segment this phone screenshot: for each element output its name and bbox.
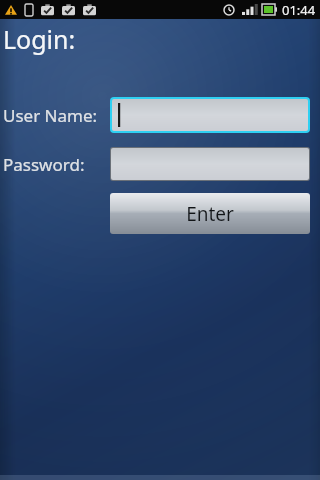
staticText: Password: (3, 153, 85, 176)
button[interactable]: Enter (110, 193, 310, 234)
staticText: User Name: (3, 104, 98, 127)
staticText: Enter (186, 201, 234, 227)
staticText: 01:44 (282, 1, 316, 19)
button[interactable]: User Name input (112, 99, 308, 131)
button[interactable]: Password input (111, 148, 309, 180)
staticText: Login: (3, 22, 76, 56)
